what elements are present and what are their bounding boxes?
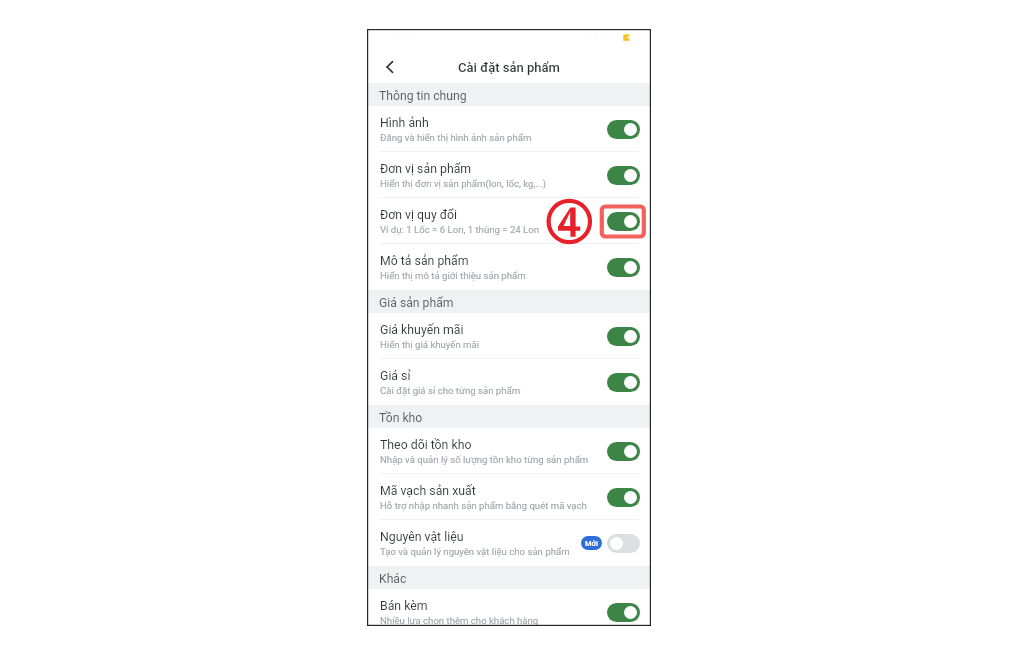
staticText: Giá khuyến mãi (380, 323, 464, 337)
staticText: Hiển thị đơn vị sản phẩm(lon, lốc, kg,..… (380, 178, 547, 189)
staticText: Nhập và quản lý số lượng tồn kho từng sả… (380, 454, 589, 465)
button[interactable]: Nguyên vật liệu (367, 520, 651, 566)
staticText: Hỗ trợ nhập nhanh sản phẩm bằng quét mã … (380, 500, 587, 511)
staticText: Nhiều lựa chọn thêm cho khách hàng (380, 615, 539, 626)
staticText: Hiển thị giá khuyến mãi (380, 339, 480, 350)
button[interactable]: Đơn vị quy đổi: on (607, 212, 640, 231)
staticText: Tồn kho (379, 411, 423, 425)
staticText: Thông tin chung (379, 89, 467, 103)
button[interactable]: Mô tả sản phẩm (367, 244, 651, 290)
button[interactable]: Đơn vị sản phẩm: on (607, 166, 640, 185)
staticText: Đăng và hiển thị hình ảnh sản phẩm (380, 132, 532, 143)
button[interactable]: Mã vạch sản xuất: on (607, 488, 640, 507)
staticText: Nguyên vật liệu (380, 530, 464, 544)
staticText: Mã vạch sản xuất (380, 484, 476, 498)
staticText: Giá sản phẩm (379, 296, 454, 310)
button[interactable]: Đơn vị quy đổi (367, 198, 651, 244)
button[interactable]: Nguyên vật liệu: off (607, 534, 640, 553)
staticText: Ví dụ: 1 Lốc = 6 Lon, 1 thùng = 24 Lon (380, 224, 539, 235)
staticText: Mới (585, 539, 598, 548)
staticText: Tạo và quản lý nguyên vật liệu cho sản p… (380, 546, 570, 557)
button[interactable]: Giá khuyến mãi (367, 313, 651, 359)
button[interactable]: Hình ảnh: on (607, 120, 640, 139)
staticText: Cài đặt giá sỉ cho từng sản phẩm (380, 385, 521, 396)
button[interactable]: Hình ảnh (367, 106, 651, 152)
staticText: Mô tả sản phẩm (380, 254, 469, 268)
button[interactable]: Giá khuyến mãi: on (607, 327, 640, 346)
staticText: Đơn vị quy đổi (380, 208, 458, 222)
staticText: Đơn vị sản phẩm (380, 162, 472, 176)
button[interactable]: Giá sỉ: on (607, 373, 640, 392)
button[interactable]: Mã vạch sản xuất (367, 474, 651, 520)
staticText: Bán kèm (380, 599, 428, 613)
staticText: Giá sỉ (380, 369, 411, 383)
button[interactable]: Theo dõi tồn kho (367, 428, 651, 474)
staticText: Theo dõi tồn kho (380, 438, 472, 452)
button[interactable]: Bán kèm: on (607, 603, 640, 622)
button[interactable]: Giá sỉ (367, 359, 651, 405)
staticText: Khác (379, 572, 407, 586)
staticText: Hình ảnh (380, 116, 429, 130)
staticText: Cài đặt sản phẩm (458, 60, 560, 75)
button[interactable]: Theo dõi tồn kho: on (607, 442, 640, 461)
button[interactable]: Back (378, 55, 402, 79)
staticText: Hiển thị mô tả giới thiệu sản phẩm (380, 270, 526, 281)
button[interactable]: Mô tả sản phẩm: on (607, 258, 640, 277)
button[interactable]: Đơn vị sản phẩm (367, 152, 651, 198)
button[interactable]: Bán kèm (367, 589, 651, 626)
